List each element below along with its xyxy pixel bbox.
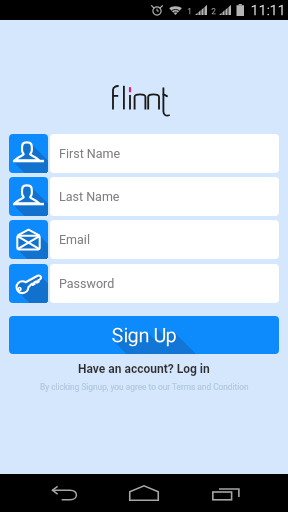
button[interactable]: Last Name	[9, 177, 48, 216]
button[interactable]: Password	[9, 264, 48, 303]
button[interactable]: Password	[50, 264, 279, 303]
button[interactable]	[9, 316, 279, 354]
staticText: Last Name	[59, 189, 120, 204]
staticText: First Name	[59, 146, 121, 161]
staticText: Email	[59, 232, 90, 247]
button[interactable]: First Name	[50, 134, 279, 173]
button[interactable]: Last Name	[50, 177, 279, 216]
button[interactable]: Recent apps	[181, 474, 288, 512]
button[interactable]: Email	[50, 220, 279, 259]
staticText: Password	[59, 276, 115, 291]
button[interactable]: First Name	[9, 134, 48, 173]
button[interactable]: Home	[107, 474, 181, 512]
button[interactable]: Email	[9, 220, 48, 259]
button[interactable]: Back	[0, 474, 107, 512]
button[interactable]: Have an account? Log in	[72, 360, 216, 378]
staticText: By clicking Signup, you agree to our Ter…	[40, 382, 249, 392]
